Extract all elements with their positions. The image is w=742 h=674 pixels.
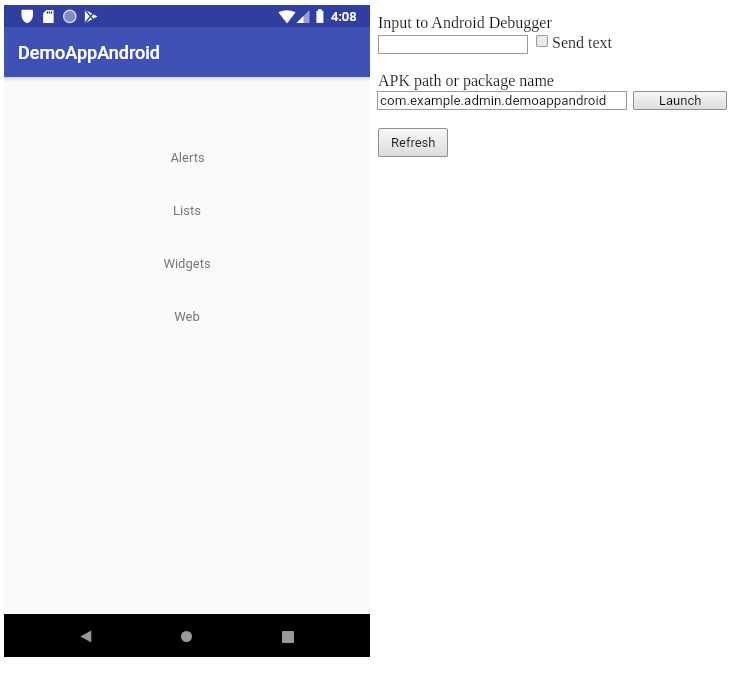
staticText: Refresh bbox=[391, 135, 436, 150]
button[interactable]: Refresh bbox=[378, 128, 448, 157]
button[interactable]: Home bbox=[164, 614, 208, 657]
staticText: APK path or package name bbox=[378, 72, 554, 90]
button[interactable]: com.example.admin.demoappandroid bbox=[377, 91, 627, 110]
staticText: Input to Android Debugger bbox=[378, 14, 552, 32]
button[interactable]: Alerts bbox=[4, 131, 370, 184]
button[interactable]: Widgets bbox=[4, 237, 370, 290]
staticText: Launch bbox=[659, 93, 702, 108]
staticText: Lists bbox=[173, 203, 201, 218]
staticText: Alerts bbox=[170, 150, 205, 165]
staticText: Widgets bbox=[163, 256, 211, 271]
staticText: 4:08 bbox=[331, 9, 357, 24]
button[interactable] bbox=[378, 35, 528, 54]
button[interactable]: Web bbox=[4, 290, 370, 343]
button[interactable]: Lists bbox=[4, 184, 370, 237]
staticText: Web bbox=[174, 309, 200, 324]
button[interactable]: Recent apps bbox=[266, 614, 310, 657]
staticText: com.example.admin.demoappandroid bbox=[380, 93, 607, 109]
button[interactable]: Back bbox=[64, 614, 108, 657]
button[interactable]: Send text checkbox bbox=[536, 35, 548, 47]
staticText: DemoAppAndroid bbox=[18, 42, 160, 63]
staticText: Send text bbox=[552, 34, 612, 52]
button[interactable]: Launch bbox=[633, 91, 727, 110]
